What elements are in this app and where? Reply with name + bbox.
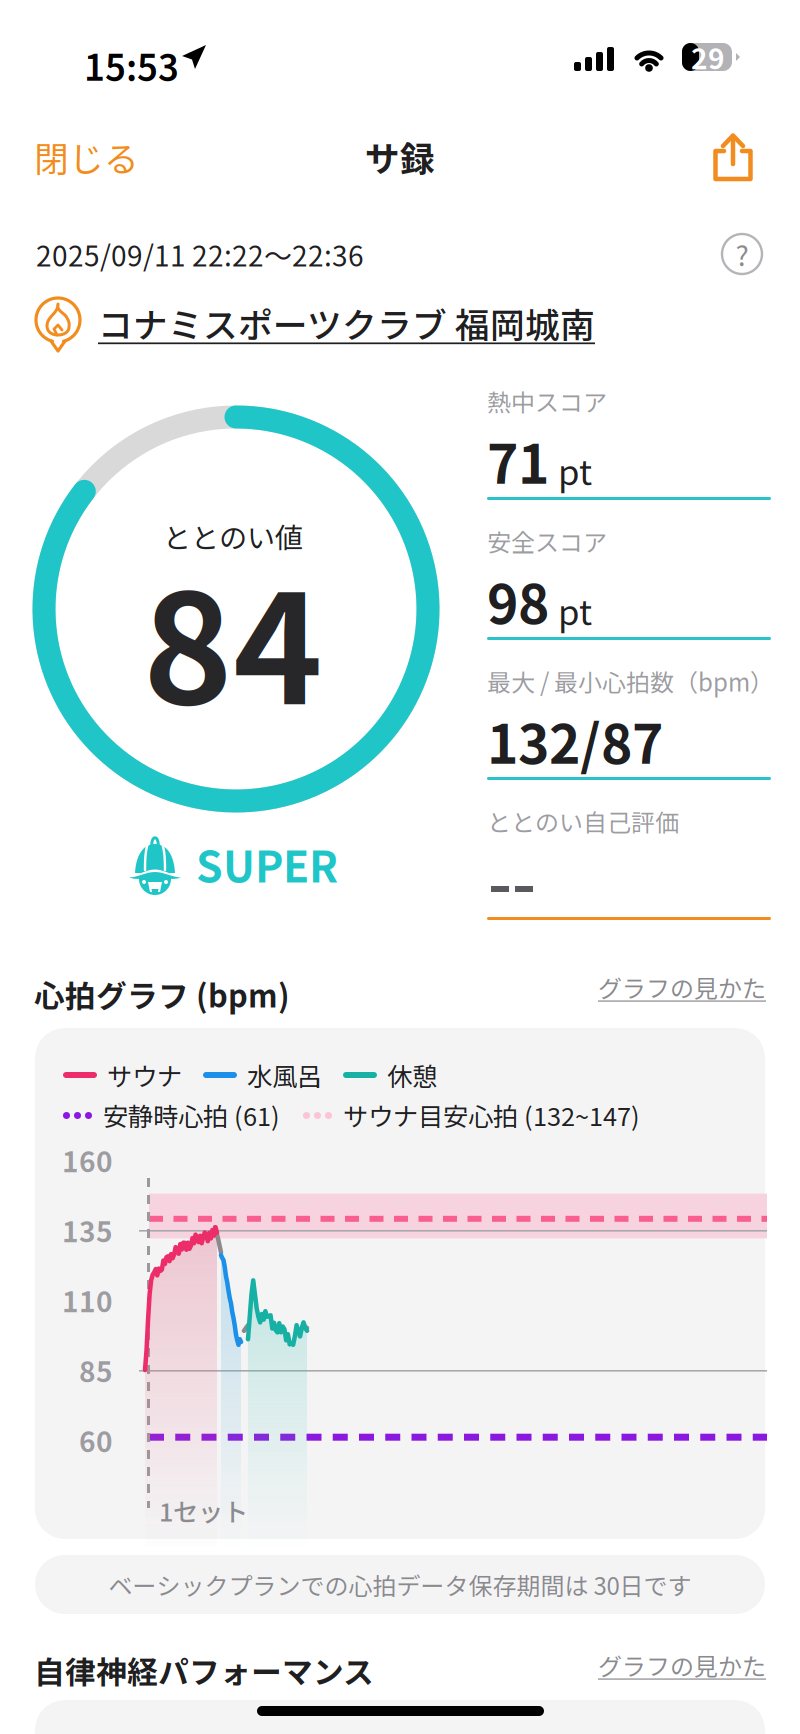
button[interactable]: グラフの見かた xyxy=(566,1642,766,1688)
staticText: 60 xyxy=(79,1420,113,1460)
staticText: 自律神経パフォーマンス xyxy=(34,1648,374,1692)
staticText: グラフの見かた xyxy=(598,1648,766,1682)
staticText: 閉じる xyxy=(34,132,139,182)
staticText: 心拍グラフ (bpm) xyxy=(34,972,290,1016)
staticText: 水風呂 xyxy=(247,1057,322,1093)
staticText: ? xyxy=(735,234,748,274)
staticText: コナミスポーツクラブ 福岡城南 xyxy=(98,298,595,348)
staticText: サ録 xyxy=(365,132,435,182)
staticText: サウナ xyxy=(107,1057,182,1093)
staticText: 29 xyxy=(691,37,725,77)
staticText: 135 xyxy=(62,1210,113,1250)
staticText: 安静時心拍 (61) xyxy=(103,1097,280,1133)
staticText: 71 xyxy=(487,422,549,499)
staticText: ベーシックプランでの心拍データ保存期間は 30日です xyxy=(108,1567,691,1602)
staticText: 110 xyxy=(62,1280,113,1320)
staticText: グラフの見かた xyxy=(598,970,766,1004)
staticText: 98 xyxy=(487,562,549,639)
staticText: 15:53 xyxy=(84,39,179,91)
button[interactable]: ヘルプ xyxy=(714,226,770,282)
button[interactable]: 共有 xyxy=(698,122,768,192)
staticText: 160 xyxy=(62,1140,113,1180)
staticText: 熱中スコア xyxy=(487,384,607,418)
button[interactable]: グラフの見かた xyxy=(566,964,766,1010)
staticText: 84 xyxy=(143,528,323,748)
staticText: ととのい値 xyxy=(163,516,303,556)
staticText: 休憩 xyxy=(387,1057,437,1093)
staticText: 132/87 xyxy=(487,702,663,779)
staticText: 85 xyxy=(79,1350,113,1390)
staticText: pt xyxy=(558,445,592,495)
staticText: 最大 / 最小心拍数（bpm） xyxy=(487,664,774,698)
button[interactable]: 閉じる xyxy=(34,122,164,192)
staticText: ととのい自己評価 xyxy=(487,804,679,838)
staticText: 2025/09/11 22:22〜22:36 xyxy=(36,234,364,274)
staticText: 1セット xyxy=(159,1492,248,1529)
button[interactable]: コナミスポーツクラブ 福岡城南 xyxy=(98,294,595,352)
staticText: pt xyxy=(558,585,592,635)
staticText: サウナ目安心拍 (132~147) xyxy=(343,1097,640,1133)
staticText: SUPER xyxy=(196,833,338,895)
staticText: 安全スコア xyxy=(487,524,607,558)
